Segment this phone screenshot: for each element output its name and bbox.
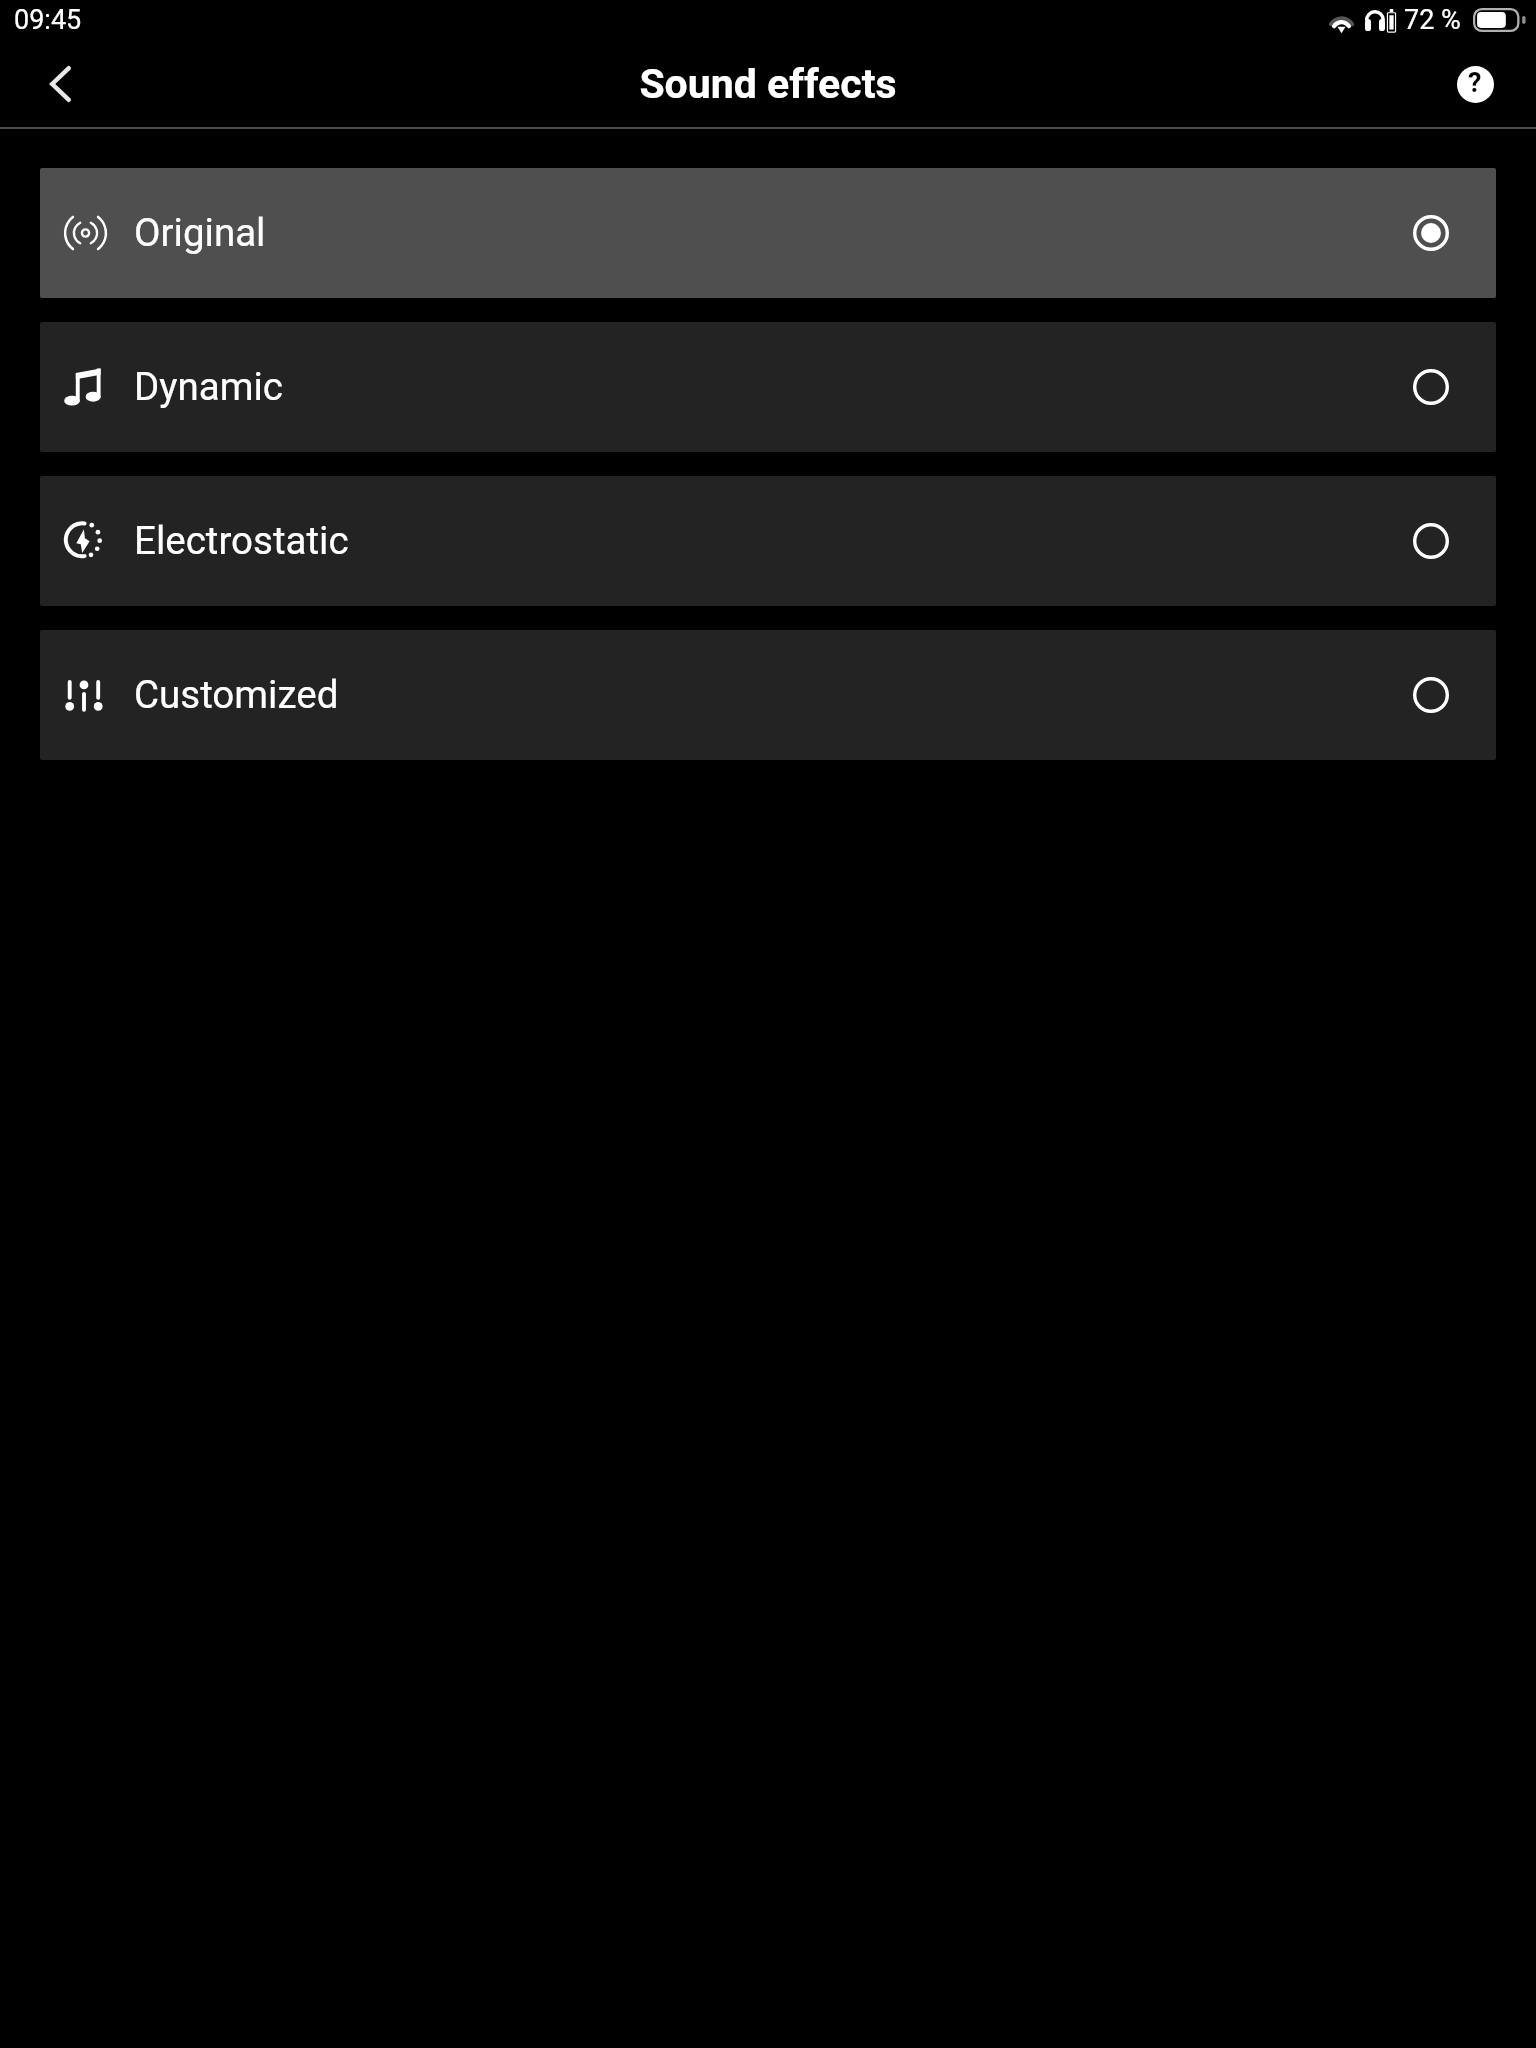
staticText: 09:45 xyxy=(14,4,82,36)
staticText: Customized xyxy=(134,672,339,717)
staticText: Dynamic xyxy=(134,364,283,409)
staticText: Original xyxy=(134,210,266,255)
button[interactable]: Dynamic xyxy=(40,322,1496,452)
staticText: ? xyxy=(1468,67,1482,99)
button[interactable]: Electrostatic xyxy=(40,476,1496,606)
staticText: Electrostatic xyxy=(134,518,349,563)
button[interactable]: Original xyxy=(40,168,1496,298)
button[interactable]: Customized xyxy=(40,630,1496,760)
button[interactable]: Help xyxy=(1451,60,1499,108)
staticText: 72 % xyxy=(1404,4,1461,36)
button[interactable]: Back xyxy=(16,40,104,127)
staticText: Sound effects xyxy=(639,60,897,108)
